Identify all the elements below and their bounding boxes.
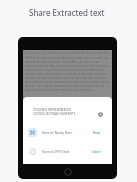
button[interactable]: Share via OPPO Share <box>23 142 112 161</box>
staticText: Share Extracted text <box>29 7 105 18</box>
staticText: STUDENTS REPRESENTATIVE COUNCIL/ECOWAS U… <box>33 108 96 116</box>
button[interactable]: Share via 'Nearby Share' <box>23 123 112 142</box>
staticText: However, Diploma in Integrated Business … <box>25 50 110 97</box>
button[interactable]: Home <box>64 168 72 176</box>
staticText: Share via 'Nearby Share' <box>42 131 73 135</box>
button[interactable]: Settings <box>96 110 104 118</box>
staticText: Share <box>93 131 101 135</box>
staticText: Cancel <box>92 150 101 154</box>
staticText: Share via OPPO Share <box>42 150 70 154</box>
